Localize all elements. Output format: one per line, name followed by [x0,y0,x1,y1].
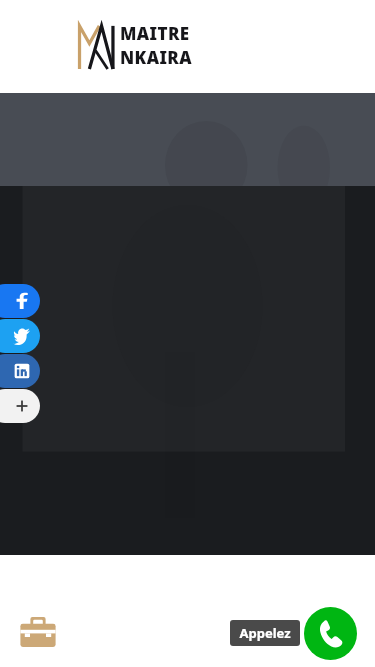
button[interactable]: Twitter [0,319,40,353]
button[interactable]: Maitre Nkaira home [78,23,192,70]
button[interactable]: Appelez [230,620,300,646]
staticText: Appelez [239,624,291,642]
button[interactable]: Facebook [0,284,40,318]
button[interactable]: More sharing options [0,389,40,423]
staticText: MAITRE [120,22,190,45]
button[interactable]: LinkedIn [0,354,40,388]
button[interactable]: Services [14,609,62,657]
button[interactable]: Call [304,607,357,660]
staticText: NKAIRA [120,46,192,69]
